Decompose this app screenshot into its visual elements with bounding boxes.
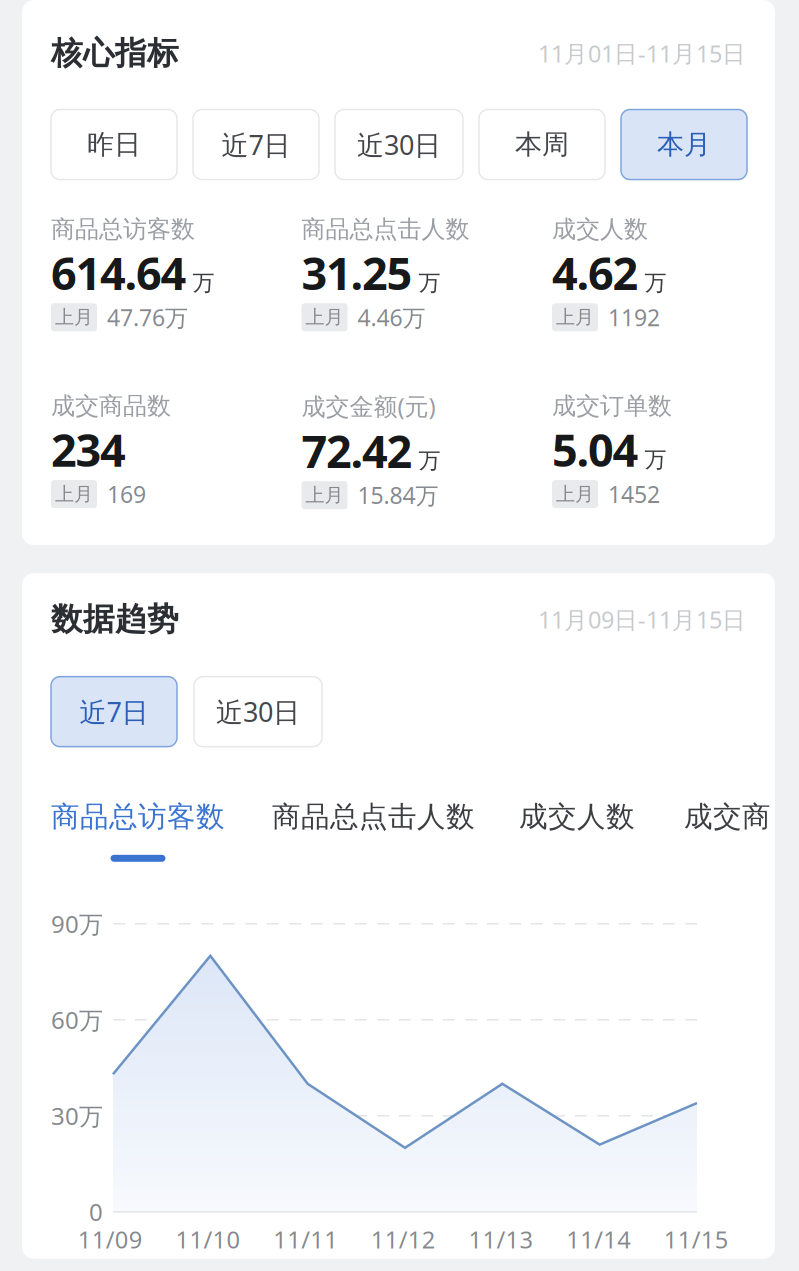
staticText: 11/09 — [78, 1226, 143, 1253]
staticText: 近7日 — [221, 126, 290, 163]
staticText: 上月 — [55, 484, 93, 504]
staticText: 1452 — [608, 481, 660, 507]
staticText: 11/13 — [468, 1226, 533, 1253]
staticText: 上月 — [556, 484, 594, 504]
staticText: 11月09日-11月15日 — [538, 606, 746, 633]
staticText: 5.04 — [552, 427, 638, 472]
staticText: 上月 — [305, 485, 343, 505]
staticText: 11/12 — [371, 1226, 436, 1253]
staticText: 169 — [107, 481, 146, 507]
staticText: 本周 — [515, 127, 569, 161]
staticText: 成交订单数 — [552, 393, 672, 419]
button[interactable]: 商品总访客数 — [51, 802, 225, 862]
button[interactable]: 近7日 — [51, 677, 177, 747]
staticText: 近30日 — [216, 693, 300, 730]
staticText: 1192 — [608, 304, 660, 330]
staticText: 上月 — [556, 308, 594, 327]
button[interactable]: 近30日 — [335, 109, 463, 179]
staticText: 万 — [418, 448, 440, 473]
button[interactable]: 成交商 — [684, 802, 771, 832]
staticText: 本月 — [657, 127, 711, 161]
staticText: 成交金额(元) — [301, 392, 435, 420]
staticText: 近30日 — [357, 126, 441, 163]
staticText: 11/15 — [664, 1226, 729, 1253]
staticText: 上月 — [305, 308, 343, 327]
button[interactable]: 近7日 — [193, 109, 319, 179]
staticText: 0 — [89, 1198, 103, 1226]
staticText: 30万 — [51, 1102, 103, 1130]
staticText: 234 — [51, 427, 126, 472]
staticText: 商品总访客数 — [51, 216, 195, 242]
staticText: 成交人数 — [552, 216, 648, 242]
button[interactable]: 昨日 — [51, 109, 177, 179]
staticText: 11/10 — [175, 1226, 240, 1253]
staticText: 成交商 — [684, 802, 771, 832]
staticText: 90万 — [51, 910, 103, 938]
staticText: 4.46万 — [357, 304, 425, 330]
staticText: 近7日 — [79, 693, 148, 730]
staticText: 昨日 — [87, 127, 141, 161]
button[interactable]: 本月 — [621, 109, 747, 179]
staticText: 60万 — [51, 1006, 103, 1034]
staticText: 成交人数 — [519, 802, 635, 832]
staticText: 万 — [644, 447, 666, 472]
staticText: 商品总访客数 — [51, 802, 225, 832]
staticText: 万 — [192, 270, 214, 295]
staticText: 47.76万 — [107, 304, 188, 330]
staticText: 4.62 — [552, 250, 638, 295]
button[interactable]: 本周 — [479, 109, 605, 179]
staticText: 72.42 — [301, 428, 412, 473]
staticText: 商品总点击人数 — [272, 802, 475, 832]
staticText: 11/14 — [566, 1226, 631, 1253]
staticText: 614.64 — [51, 250, 186, 295]
staticText: 31.25 — [301, 250, 412, 295]
staticText: 11/11 — [273, 1226, 338, 1253]
staticText: 15.84万 — [357, 482, 438, 508]
staticText: 上月 — [55, 308, 93, 327]
staticText: 11月01日-11月15日 — [538, 40, 746, 67]
button[interactable]: 成交人数 — [519, 802, 635, 832]
button[interactable]: 商品总点击人数 — [272, 802, 475, 832]
staticText: 数据趋势 — [51, 603, 179, 636]
button[interactable]: 近30日 — [194, 677, 322, 747]
staticText: 商品总点击人数 — [301, 216, 469, 242]
staticText: 核心指标 — [51, 37, 179, 69]
staticText: 万 — [418, 270, 440, 295]
staticText: 成交商品数 — [51, 393, 171, 419]
staticText: 万 — [644, 270, 666, 295]
